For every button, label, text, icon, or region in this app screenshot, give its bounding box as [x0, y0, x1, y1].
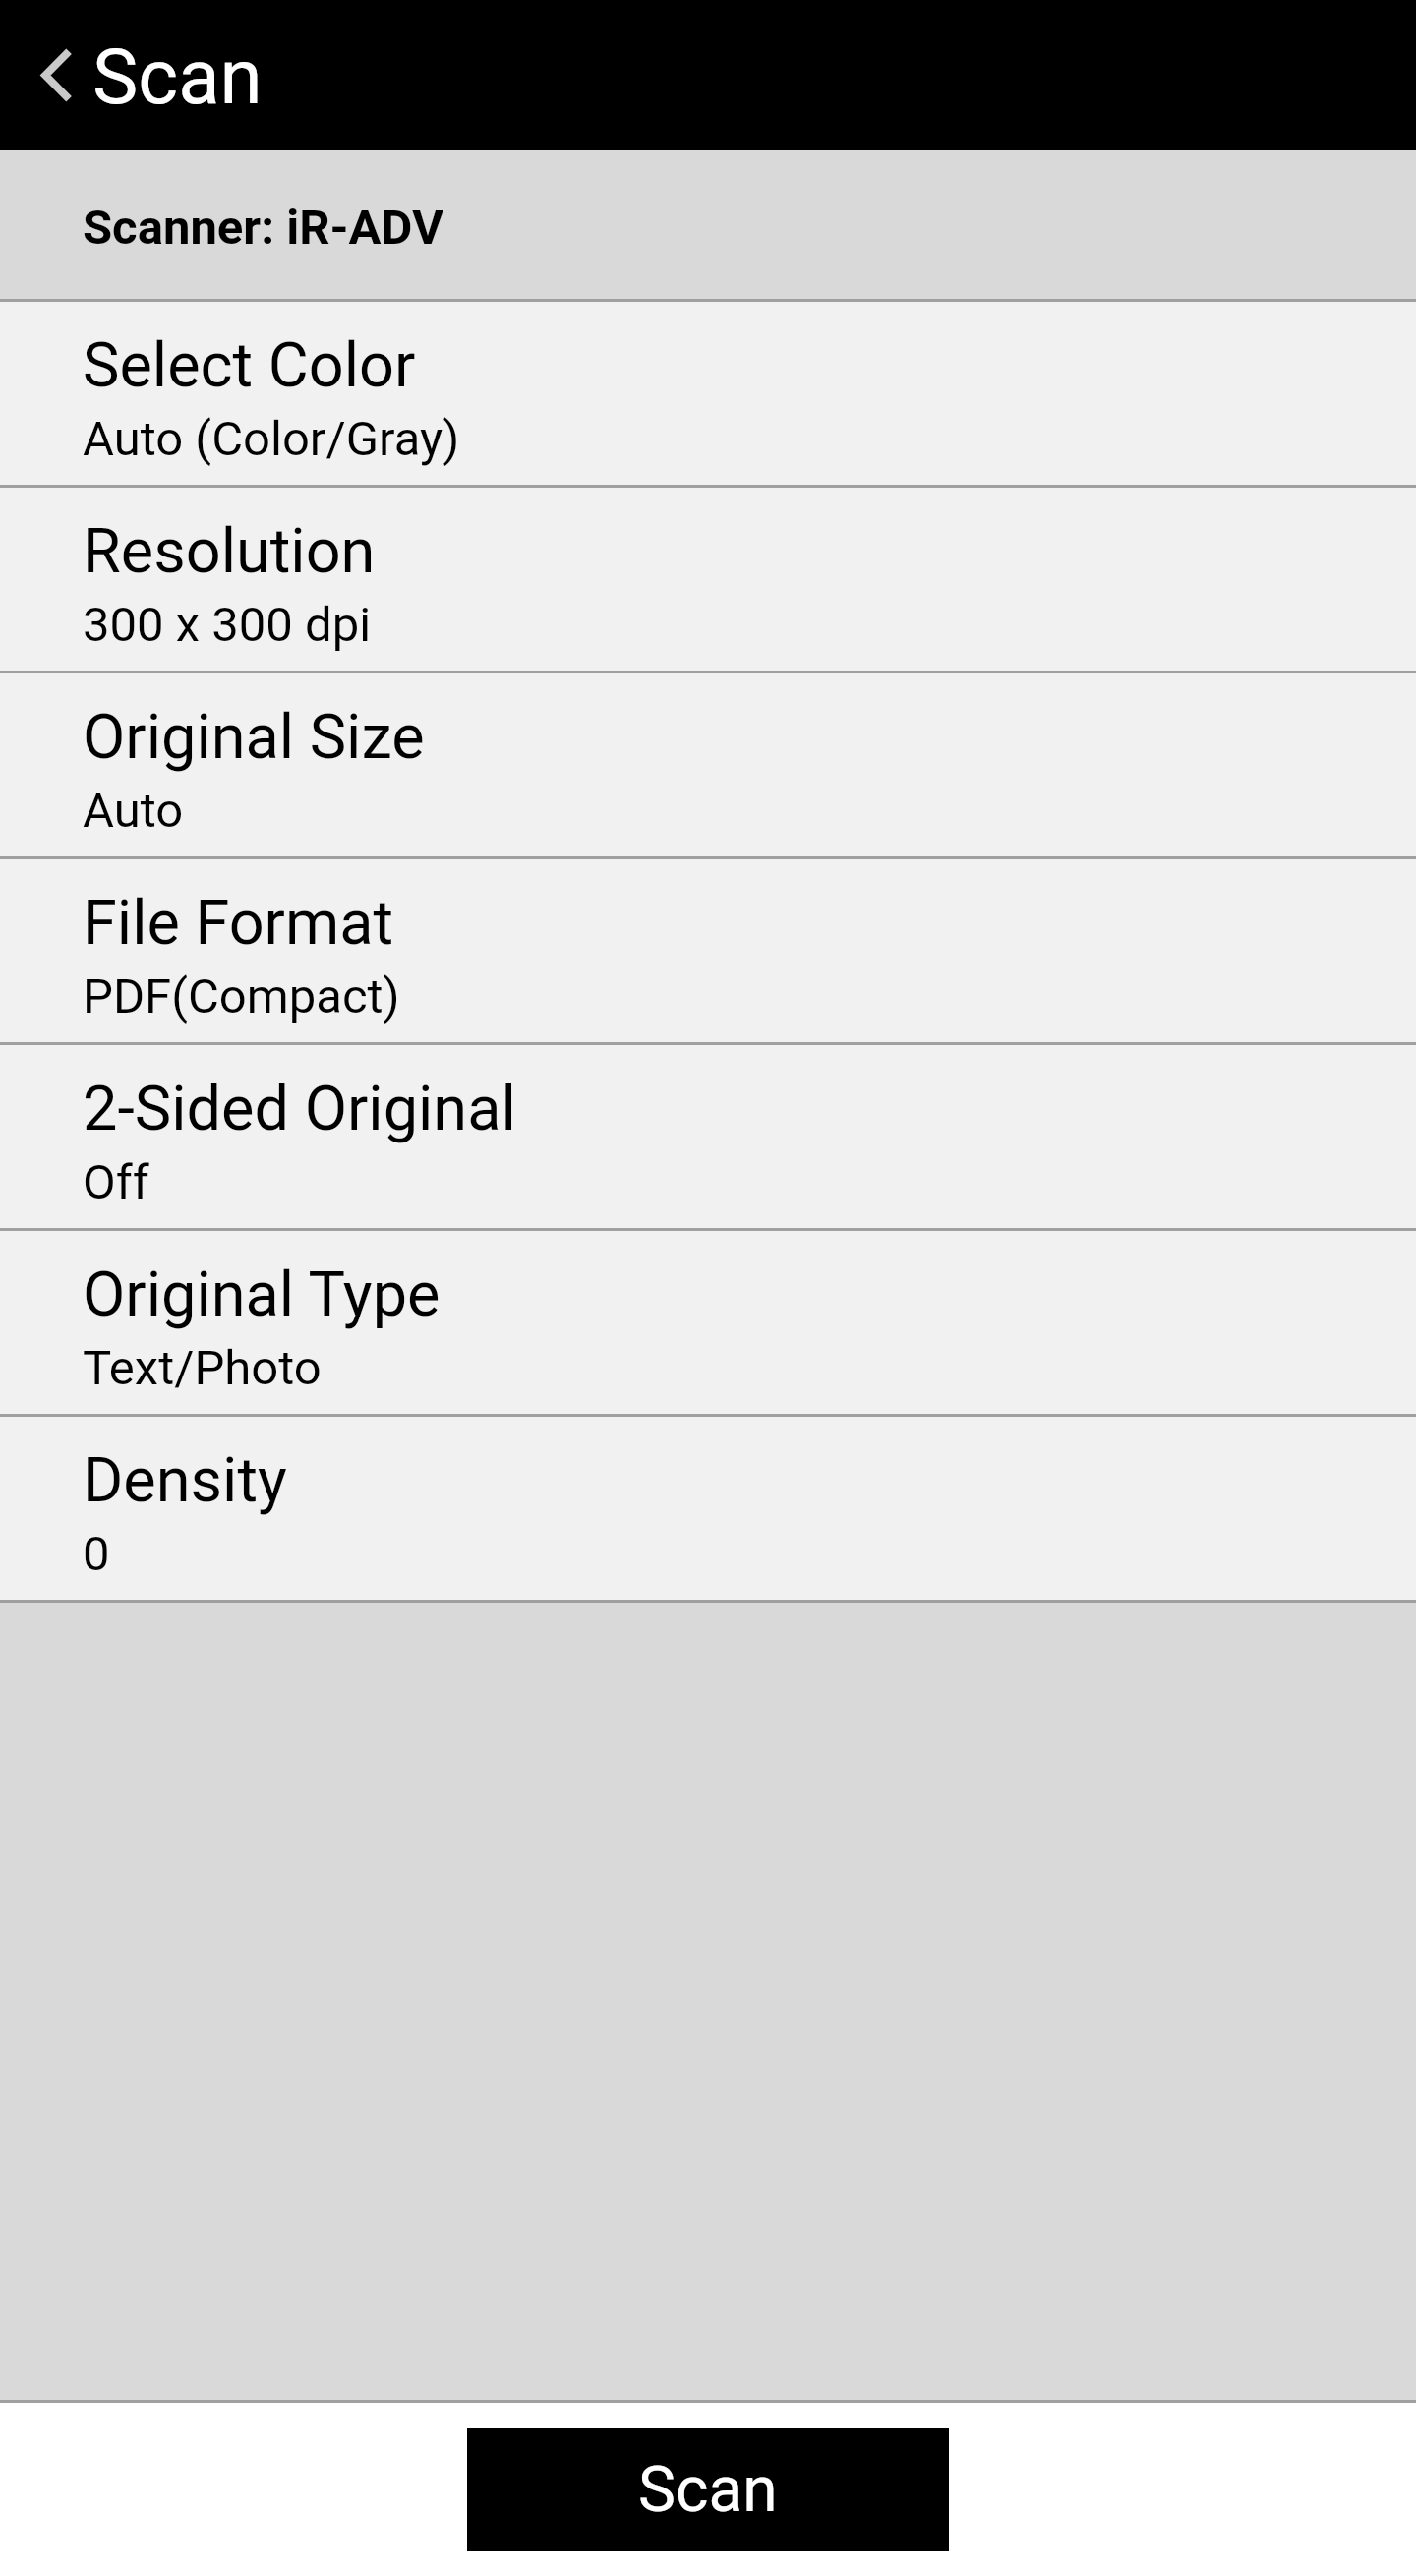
button[interactable]: Density	[0, 1417, 1416, 1600]
button[interactable]: Back	[0, 0, 1416, 150]
staticText: Text/Photo	[83, 1340, 322, 1396]
button[interactable]: Original Type	[0, 1231, 1416, 1414]
staticText: Off	[83, 1154, 149, 1210]
staticText: File Format	[83, 887, 394, 960]
staticText: Scan	[92, 32, 263, 122]
button[interactable]: Scan	[467, 2428, 949, 2551]
staticText: Original Type	[83, 1259, 441, 1331]
button[interactable]: File Format	[0, 859, 1416, 1042]
staticText: 2-Sided Original	[83, 1073, 516, 1145]
staticText: Scanner: iR-ADV	[83, 200, 443, 256]
staticText: Scan	[638, 2453, 778, 2527]
staticText: Resolution	[83, 515, 376, 588]
button[interactable]: Original Size	[0, 673, 1416, 856]
button[interactable]: Resolution	[0, 488, 1416, 671]
button[interactable]: 2-Sided Original	[0, 1045, 1416, 1228]
staticText: PDF(Compact)	[83, 968, 400, 1025]
button[interactable]: Select Color	[0, 302, 1416, 485]
staticText: Auto (Color/Gray)	[83, 411, 460, 467]
staticText: Select Color	[83, 329, 416, 402]
staticText: Original Size	[83, 701, 425, 774]
staticText: Density	[83, 1444, 287, 1517]
staticText: 300 x 300 dpi	[83, 597, 372, 653]
staticText: Auto	[83, 783, 184, 839]
staticText: 0	[83, 1526, 110, 1582]
